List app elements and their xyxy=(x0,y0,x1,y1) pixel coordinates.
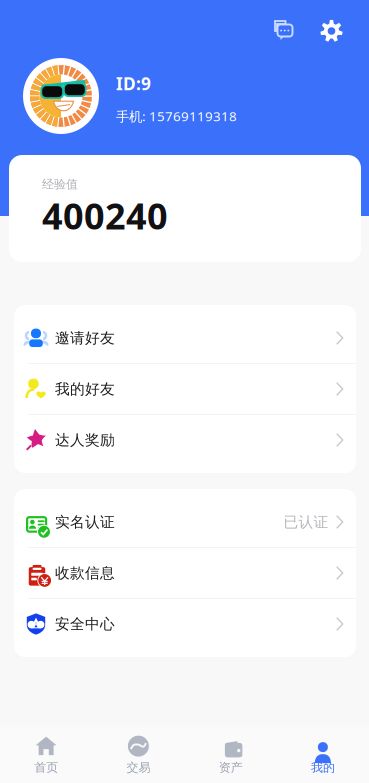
staticText: 交易 xyxy=(126,760,150,775)
staticText: 首页 xyxy=(34,760,58,775)
staticText: 实名认证 xyxy=(55,513,115,531)
button[interactable]: 我的好友 xyxy=(14,364,356,414)
button[interactable]: 达人奖励 xyxy=(14,415,356,465)
button[interactable]: 首页 xyxy=(0,727,92,783)
staticText: 经验值 xyxy=(42,177,78,192)
button[interactable]: 资产 xyxy=(184,727,277,783)
staticText: 资产 xyxy=(219,760,243,775)
button[interactable]: 邀请好友 xyxy=(14,313,356,363)
staticText: ID:9 xyxy=(116,72,151,95)
button[interactable]: 安全中心 xyxy=(14,599,356,649)
staticText: 安全中心 xyxy=(55,615,115,633)
staticText: 已认证 xyxy=(283,513,328,531)
button[interactable]: 实名认证 xyxy=(14,497,356,547)
staticText: 手机: 15769119318 xyxy=(116,107,237,125)
button[interactable]: Messages xyxy=(269,16,299,46)
staticText: 邀请好友 xyxy=(55,329,115,347)
staticText: 达人奖励 xyxy=(55,431,115,449)
button[interactable]: 交易 xyxy=(92,727,184,783)
staticText: 收款信息 xyxy=(55,564,115,582)
button[interactable]: 我的 xyxy=(277,727,369,783)
staticText: 我的 xyxy=(311,760,335,775)
button[interactable]: Settings xyxy=(317,16,346,45)
staticText: 我的好友 xyxy=(55,380,115,398)
button[interactable]: 收款信息 xyxy=(14,548,356,598)
staticText: 400240 xyxy=(42,192,168,239)
